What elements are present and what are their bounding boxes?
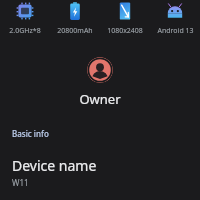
- button[interactable]: Device name: [0, 156, 200, 196]
- staticText: Device name: [12, 156, 97, 175]
- staticText: W11: [12, 177, 29, 188]
- button[interactable]: CPU: [0, 0, 50, 36]
- staticText: Android 13: [157, 26, 194, 36]
- staticText: 2.0GHz*8: [9, 26, 41, 36]
- staticText: Owner: [79, 90, 121, 108]
- button[interactable]: Android version: [150, 0, 200, 36]
- button[interactable]: Display: [100, 0, 150, 36]
- staticText: 1080x2408: [107, 26, 143, 36]
- staticText: Basic info: [12, 128, 49, 139]
- button[interactable]: Owner avatar: [0, 57, 200, 108]
- button[interactable]: Battery: [50, 0, 100, 36]
- staticText: 20800mAh: [57, 26, 93, 36]
- other: Owner avatar: [87, 57, 113, 83]
